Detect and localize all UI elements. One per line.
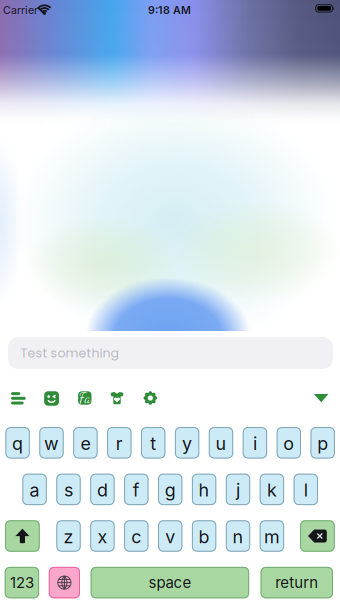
staticText: j: [236, 479, 240, 501]
staticText: 9:18 AM: [148, 3, 191, 16]
button[interactable]: [226, 474, 250, 505]
button[interactable]: [226, 520, 250, 552]
button[interactable]: [22, 474, 47, 505]
staticText: k: [267, 479, 277, 501]
staticText: space: [148, 574, 191, 592]
button[interactable]: [294, 474, 318, 505]
staticText: Carrier: [3, 3, 38, 16]
staticText: q: [12, 433, 23, 454]
staticText: Fa: [79, 390, 91, 406]
staticText: d: [97, 479, 108, 501]
button[interactable]: Themes: [110, 392, 124, 404]
staticText: f: [133, 479, 140, 501]
staticText: v: [165, 526, 175, 547]
button[interactable]: [260, 474, 284, 505]
staticText: i: [253, 433, 257, 454]
staticText: y: [182, 433, 192, 454]
staticText: e: [80, 433, 90, 454]
button[interactable]: [5, 567, 39, 598]
button[interactable]: [141, 427, 165, 459]
button[interactable]: Next keyboard: [49, 567, 80, 598]
staticText: return: [275, 574, 318, 592]
button[interactable]: Hide keyboard: [314, 393, 328, 402]
button[interactable]: [192, 474, 216, 505]
button[interactable]: Menu: [11, 392, 26, 404]
staticText: u: [215, 433, 226, 454]
button[interactable]: [310, 427, 335, 459]
staticText: g: [165, 479, 176, 501]
button[interactable]: [39, 427, 64, 459]
staticText: o: [283, 433, 294, 454]
button[interactable]: [107, 427, 131, 459]
button[interactable]: [5, 427, 30, 459]
button[interactable]: [90, 474, 115, 505]
staticText: t: [150, 433, 156, 454]
button[interactable]: [277, 427, 301, 459]
button[interactable]: Test something: [8, 337, 333, 369]
staticText: x: [97, 526, 107, 547]
staticText: p: [317, 433, 328, 454]
staticText: c: [131, 526, 141, 547]
staticText: w: [44, 433, 59, 454]
staticText: z: [63, 526, 73, 547]
button[interactable]: [243, 427, 267, 459]
button[interactable]: [73, 427, 98, 459]
button[interactable]: Shift: [5, 520, 40, 552]
button[interactable]: [56, 474, 81, 505]
button[interactable]: [90, 520, 115, 552]
button[interactable]: [261, 567, 333, 598]
button[interactable]: [158, 520, 182, 552]
button[interactable]: [158, 474, 182, 505]
staticText: n: [232, 526, 243, 547]
staticText: 123: [10, 574, 34, 592]
staticText: Test something: [20, 344, 118, 362]
button[interactable]: [209, 427, 233, 459]
button[interactable]: Fonts: [78, 391, 91, 405]
button[interactable]: [124, 474, 148, 505]
button[interactable]: Delete: [300, 520, 335, 552]
button[interactable]: [192, 520, 216, 552]
staticText: m: [264, 526, 280, 547]
staticText: s: [64, 479, 73, 501]
staticText: a: [30, 479, 40, 501]
button[interactable]: Emoji: [44, 391, 59, 406]
button[interactable]: Settings: [143, 390, 158, 405]
button[interactable]: [260, 520, 284, 552]
button[interactable]: [175, 427, 199, 459]
staticText: h: [199, 479, 210, 501]
button[interactable]: [124, 520, 148, 552]
button[interactable]: [56, 520, 81, 552]
staticText: r: [116, 433, 123, 454]
staticText: l: [304, 479, 308, 501]
staticText: b: [199, 526, 210, 547]
button[interactable]: [91, 567, 249, 598]
